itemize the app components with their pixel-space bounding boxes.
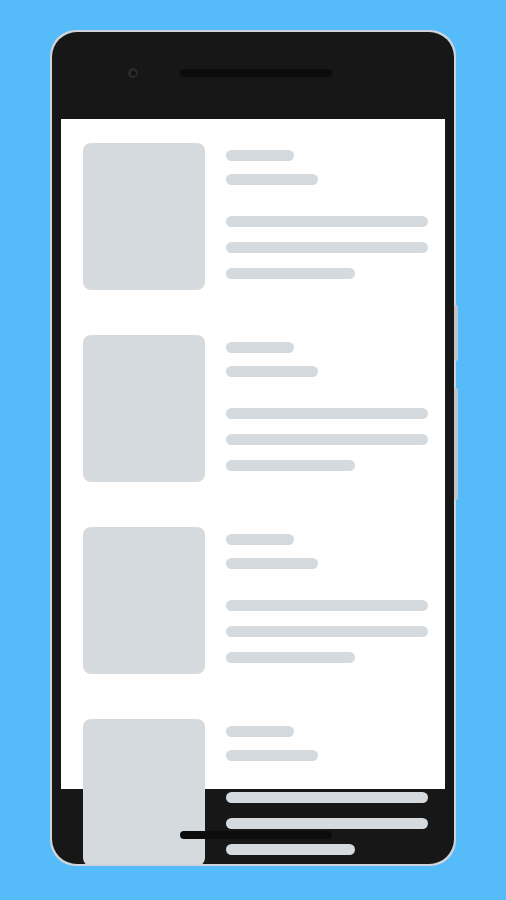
other: Volume button — [454, 388, 458, 500]
button[interactable] — [61, 335, 445, 482]
button[interactable] — [61, 527, 445, 674]
button[interactable] — [61, 143, 445, 290]
button[interactable] — [61, 719, 445, 864]
other: Power button — [454, 305, 458, 361]
